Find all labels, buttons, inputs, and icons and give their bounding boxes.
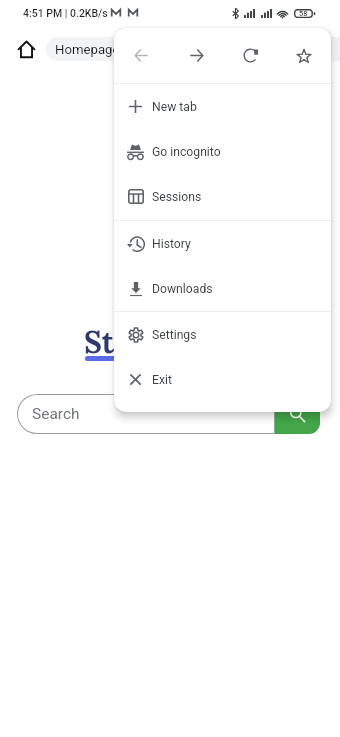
button[interactable]: Forward: [169, 28, 223, 83]
staticText: Search: [32, 405, 80, 423]
button[interactable]: Bookmark: [277, 28, 331, 83]
button[interactable]: History: [114, 221, 331, 266]
button[interactable]: Go incognito: [114, 129, 331, 174]
button[interactable]: Homepage: [46, 37, 340, 61]
button[interactable]: New tab: [114, 84, 331, 129]
staticText: New tab: [152, 100, 197, 114]
button[interactable]: Exit: [114, 357, 331, 402]
staticText: Homepage: [55, 42, 120, 57]
staticText: Go incognito: [152, 145, 221, 159]
staticText: Downloads: [152, 282, 213, 296]
button[interactable]: Settings: [114, 312, 331, 357]
staticText: Settings: [152, 328, 197, 342]
staticText: History: [152, 237, 191, 251]
staticText: Exit: [152, 373, 172, 387]
button[interactable]: Home: [12, 35, 40, 63]
button[interactable]: Sessions: [114, 174, 331, 219]
button[interactable]: Search: [17, 394, 275, 434]
button[interactable]: Back: [114, 28, 169, 83]
button[interactable]: Reload: [223, 28, 277, 83]
button[interactable]: Downloads: [114, 266, 331, 311]
staticText: Sessions: [152, 190, 202, 204]
staticText: Startpage: [84, 323, 224, 361]
staticText: 4:51 PM | 0.2KB/s: [23, 7, 108, 19]
button[interactable]: Search: [275, 394, 320, 434]
staticText: 58: [299, 9, 308, 18]
